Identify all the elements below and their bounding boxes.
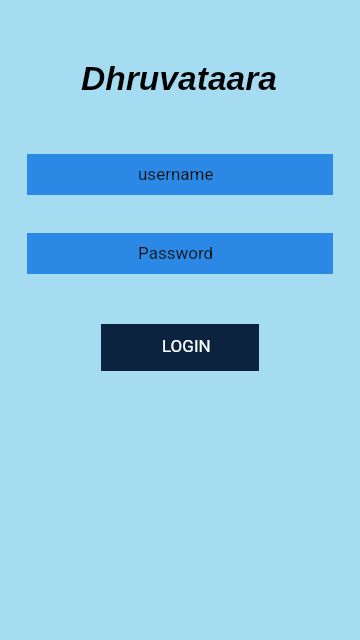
staticText: LOGIN [162,336,211,356]
staticText: Dhruvataara [0,60,359,98]
staticText: username [138,164,214,184]
button[interactable]: LOGIN [101,324,259,371]
staticText: Password [138,243,214,263]
button[interactable]: username [27,154,333,195]
button[interactable]: Password [27,233,333,274]
